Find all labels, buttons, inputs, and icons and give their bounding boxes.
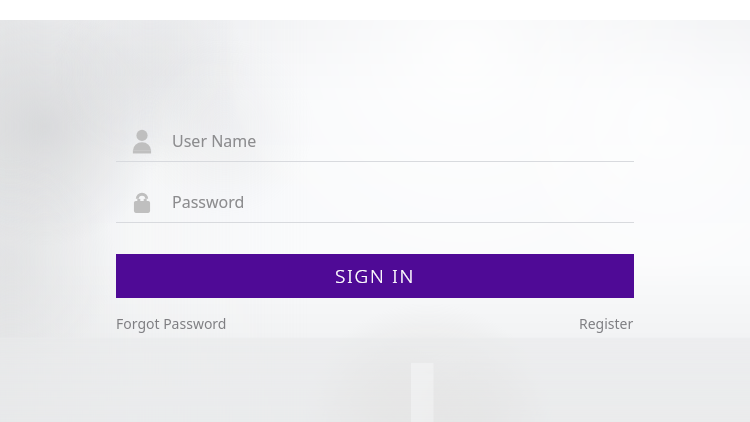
staticText: Password bbox=[172, 191, 245, 213]
button[interactable]: SIGN IN bbox=[116, 254, 634, 298]
staticText: Forgot Password bbox=[116, 314, 227, 333]
staticText: SIGN IN bbox=[335, 263, 415, 289]
button[interactable]: Forgot Password bbox=[116, 314, 227, 333]
button[interactable]: Password bbox=[116, 188, 634, 216]
staticText: User Name bbox=[172, 130, 257, 152]
button[interactable]: Register bbox=[579, 314, 634, 333]
button[interactable]: User Name bbox=[116, 127, 634, 155]
staticText: Register bbox=[579, 314, 634, 333]
